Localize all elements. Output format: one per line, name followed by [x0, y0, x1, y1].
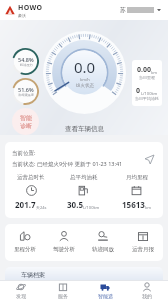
- staticText: 30.5: [67, 199, 83, 210]
- staticText: 总平均油耗: [70, 174, 98, 181]
- staticText: 0: [136, 86, 141, 96]
- button[interactable]: 运营总时长: [5, 174, 57, 210]
- button[interactable]: 54.8%: [12, 48, 39, 75]
- staticText: 冷却液温度: [18, 93, 34, 97]
- staticText: 车辆档案: [21, 271, 45, 279]
- staticText: 当日平均油耗: [135, 96, 159, 101]
- button[interactable]: 查看车辆信息: [65, 125, 104, 133]
- button[interactable]: 我的: [126, 281, 168, 300]
- staticText: 天24s: [36, 205, 47, 210]
- button[interactable]: 0.00: [132, 60, 162, 106]
- staticText: 服务: [58, 293, 68, 299]
- staticText: 熄火状态: [76, 83, 94, 89]
- staticText: 201.7: [15, 199, 36, 210]
- button[interactable]: 发现: [0, 281, 42, 300]
- staticText: 15613: [122, 199, 145, 210]
- staticText: 0.0: [74, 57, 96, 77]
- staticText: 当前位置:: [12, 149, 36, 157]
- button[interactable]: 轨迹回放: [83, 230, 123, 253]
- staticText: 智能选: [98, 293, 113, 299]
- staticText: 苏: [120, 6, 126, 14]
- button[interactable]: 51.6%: [12, 78, 39, 105]
- staticText: 智能: [20, 114, 32, 122]
- button[interactable]: 服务: [42, 281, 84, 300]
- staticText: km: [151, 70, 157, 75]
- button[interactable]: 智能: [12, 108, 39, 135]
- staticText: L/100km: [83, 205, 100, 210]
- button[interactable]: 运营月报: [123, 230, 163, 253]
- staticText: 0.00: [137, 65, 151, 75]
- staticText: 运营月报: [132, 246, 154, 253]
- staticText: 轨迹回放: [92, 246, 114, 253]
- button[interactable]: 总平均油耗: [57, 174, 110, 210]
- staticText: 当前状态: 已经熄火9分钟 更新于 01-23 13:41: [12, 160, 123, 168]
- button[interactable]: 导航: [142, 152, 156, 166]
- button[interactable]: 驾驶分析: [44, 230, 83, 253]
- staticText: HOWO: [18, 3, 43, 13]
- staticText: km/h: [80, 77, 90, 82]
- staticText: 51.6%: [18, 86, 34, 93]
- staticText: 我的: [142, 293, 152, 299]
- staticText: 54.8%: [18, 56, 34, 63]
- button[interactable]: 苏: [118, 4, 163, 16]
- staticText: L/100km: [141, 91, 158, 96]
- button[interactable]: 智能选: [84, 281, 126, 300]
- staticText: 诊断: [20, 122, 32, 130]
- staticText: 发现: [16, 293, 26, 299]
- button[interactable]: 车辆档案: [5, 267, 163, 280]
- staticText: 月均里程: [126, 174, 148, 181]
- staticText: 查看车辆信息: [65, 125, 104, 133]
- staticText: 驾驶分析: [53, 246, 75, 253]
- staticText: 运营总时长: [17, 174, 45, 181]
- staticText: 豪沃: [18, 13, 26, 18]
- staticText: 里程分析: [14, 246, 36, 253]
- staticText: 机油压力: [20, 63, 33, 67]
- staticText: 当日里程: [139, 75, 155, 80]
- staticText: km: [145, 205, 151, 210]
- button[interactable]: 里程分析: [5, 230, 44, 253]
- button[interactable]: 月均里程: [110, 174, 163, 210]
